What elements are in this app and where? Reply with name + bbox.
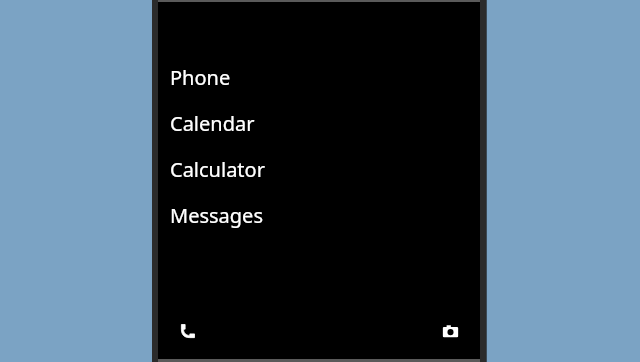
button[interactable]: Phone — [165, 310, 209, 354]
staticText: Phone — [170, 64, 231, 91]
button[interactable]: Camera — [428, 309, 472, 353]
button[interactable]: Calculator — [170, 154, 468, 184]
button[interactable]: Messages — [170, 200, 468, 230]
staticText: Messages — [170, 202, 263, 229]
button[interactable]: Phone — [170, 62, 468, 92]
staticText: Calculator — [170, 156, 265, 183]
button[interactable]: Calendar — [170, 108, 468, 138]
staticText: Calendar — [170, 110, 255, 137]
